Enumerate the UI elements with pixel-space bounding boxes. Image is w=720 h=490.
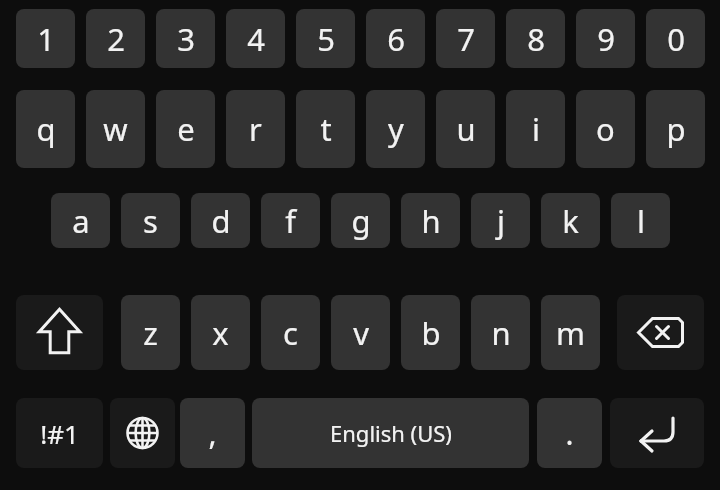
button[interactable]: Change language (110, 398, 175, 468)
staticText: c (283, 312, 298, 354)
button[interactable]: h (401, 193, 460, 248)
staticText: x (212, 312, 229, 354)
button[interactable]: 0 (646, 9, 705, 68)
button[interactable]: 6 (366, 9, 425, 68)
button[interactable]: 4 (226, 9, 285, 68)
staticText: o (596, 108, 615, 150)
staticText: d (211, 200, 231, 242)
button[interactable]: p (646, 90, 705, 168)
button[interactable]: e (156, 90, 215, 168)
staticText: e (177, 108, 195, 150)
button[interactable]: 1 (16, 9, 75, 68)
staticText: 1 (37, 18, 55, 60)
button[interactable]: English (US) (252, 398, 529, 468)
button[interactable]: . (537, 398, 602, 468)
staticText: f (285, 200, 296, 242)
button[interactable]: 8 (506, 9, 565, 68)
button[interactable]: 5 (296, 9, 355, 68)
button[interactable]: m (541, 295, 600, 370)
button[interactable]: 2 (86, 9, 145, 68)
button[interactable]: Enter (610, 398, 704, 468)
button[interactable]: Shift (16, 295, 103, 370)
staticText: n (491, 312, 511, 354)
staticText: b (421, 312, 441, 354)
staticText: w (103, 108, 128, 150)
staticText: m (556, 312, 585, 354)
staticText: u (456, 108, 476, 150)
button[interactable]: 7 (436, 9, 495, 68)
staticText: s (143, 200, 158, 242)
staticText: 0 (667, 18, 685, 60)
button[interactable]: 3 (156, 9, 215, 68)
staticText: k (562, 200, 579, 242)
button[interactable]: s (121, 193, 180, 248)
button[interactable]: 9 (576, 9, 635, 68)
staticText: p (666, 108, 686, 150)
button[interactable]: c (261, 295, 320, 370)
staticText: 3 (177, 18, 195, 60)
staticText: l (637, 200, 645, 242)
staticText: i (532, 108, 540, 150)
staticText: 2 (107, 18, 125, 60)
staticText: j (497, 200, 505, 242)
button[interactable]: z (121, 295, 180, 370)
button[interactable]: f (261, 193, 320, 248)
staticText: g (351, 200, 371, 242)
staticText: 6 (387, 18, 405, 60)
button[interactable]: y (366, 90, 425, 168)
button[interactable]: d (191, 193, 250, 248)
staticText: v (353, 312, 369, 354)
staticText: . (565, 413, 574, 454)
button[interactable]: u (436, 90, 495, 168)
button[interactable]: l (611, 193, 670, 248)
button[interactable]: , (180, 398, 245, 468)
button[interactable]: Backspace (617, 295, 704, 370)
button[interactable]: g (331, 193, 390, 248)
button[interactable]: i (506, 90, 565, 168)
button[interactable]: n (471, 295, 530, 370)
staticText: t (320, 108, 332, 150)
button[interactable]: q (16, 90, 75, 168)
button[interactable]: j (471, 193, 530, 248)
staticText: 7 (457, 18, 475, 60)
staticText: a (72, 200, 90, 242)
button[interactable]: v (331, 295, 390, 370)
staticText: r (249, 108, 262, 150)
staticText: !#1 (40, 416, 79, 451)
button[interactable]: !#1 (16, 398, 103, 468)
button[interactable]: t (296, 90, 355, 168)
button[interactable]: x (191, 295, 250, 370)
button[interactable]: a (51, 193, 110, 248)
button[interactable]: o (576, 90, 635, 168)
staticText: q (36, 108, 56, 150)
staticText: , (208, 413, 217, 454)
staticText: y (388, 108, 404, 150)
staticText: h (421, 200, 441, 242)
staticText: 4 (247, 18, 265, 60)
button[interactable]: k (541, 193, 600, 248)
staticText: z (143, 312, 158, 354)
button[interactable]: r (226, 90, 285, 168)
staticText: 5 (317, 18, 335, 60)
staticText: 8 (527, 18, 545, 60)
button[interactable]: w (86, 90, 145, 168)
staticText: 9 (597, 18, 615, 60)
button[interactable]: b (401, 295, 460, 370)
staticText: English (US) (330, 418, 452, 448)
